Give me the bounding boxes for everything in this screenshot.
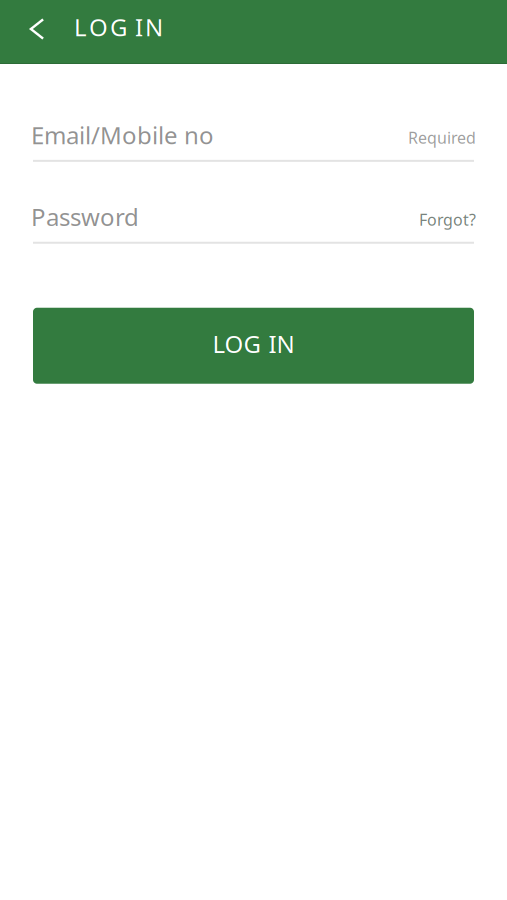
button[interactable]: LOG IN [33,308,474,384]
staticText: Forgot? [419,209,476,230]
button[interactable]: Email/Mobile no [33,119,474,162]
button[interactable]: Password [33,201,474,244]
staticText: Required [408,127,476,148]
button[interactable]: Required [406,119,474,140]
button[interactable]: Forgot password [417,201,474,222]
staticText: L O G I N [74,11,163,43]
staticText: LOG IN [212,328,294,360]
staticText: Email/Mobile no [31,119,214,151]
staticText: Password [31,201,139,233]
button[interactable]: Back [13,0,61,64]
